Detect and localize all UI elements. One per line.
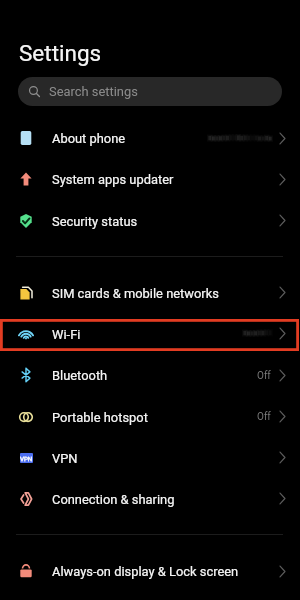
staticText: Search settings — [49, 84, 138, 99]
button[interactable] — [0, 272, 300, 313]
button[interactable] — [0, 478, 300, 519]
staticText: Bluetooth — [52, 368, 108, 383]
staticText: Always-on display & Lock screen — [52, 564, 239, 579]
button[interactable] — [0, 200, 300, 241]
staticText: Settings — [19, 40, 102, 66]
staticText: Portable hotspot — [52, 410, 148, 425]
staticText: Wi-Fi — [52, 327, 81, 342]
button[interactable] — [0, 313, 300, 354]
button[interactable] — [0, 437, 300, 478]
staticText: Connection & sharing — [52, 492, 175, 507]
button[interactable] — [0, 355, 300, 396]
button[interactable] — [0, 118, 300, 159]
staticText: About phone — [52, 131, 126, 146]
other: Search — [28, 85, 41, 98]
staticText: VPN — [20, 455, 33, 462]
button[interactable] — [0, 551, 300, 592]
staticText: Security status — [52, 214, 138, 229]
button[interactable] — [18, 77, 282, 106]
staticText: System apps updater — [52, 172, 174, 187]
staticText: VPN — [52, 451, 78, 466]
button[interactable] — [0, 396, 300, 437]
staticText: SIM cards & mobile networks — [52, 286, 219, 301]
button[interactable] — [0, 159, 300, 200]
staticText: Off — [257, 370, 271, 382]
staticText: Off — [257, 411, 271, 423]
